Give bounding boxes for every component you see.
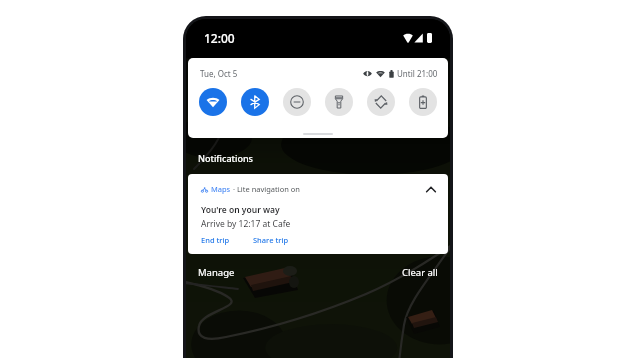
staticText: Arrive by 12:17 at Cafe	[201, 218, 291, 230]
button[interactable]: Share trip	[253, 235, 289, 245]
staticText: Tue, Oct 5	[200, 68, 238, 79]
staticText: Notifications	[198, 152, 253, 164]
button[interactable]: Battery saver	[409, 88, 437, 116]
button[interactable]: Collapse	[423, 181, 439, 197]
staticText: Maps	[211, 184, 231, 194]
button[interactable]: Bluetooth	[241, 88, 269, 116]
button[interactable]: End trip	[201, 235, 230, 245]
staticText: You're on your way	[201, 204, 280, 216]
button[interactable]: Wi-Fi	[199, 88, 227, 116]
staticText: 12:00	[204, 30, 235, 46]
button[interactable]: Clear all	[402, 266, 438, 279]
staticText: Until 21:00	[397, 68, 438, 79]
button[interactable]: Manage	[198, 266, 235, 279]
button[interactable]: Do not disturb	[283, 88, 311, 116]
button[interactable]: Flashlight	[325, 88, 353, 116]
staticText: · Lite navigation on	[231, 184, 301, 194]
button[interactable]: Auto-rotate	[367, 88, 395, 116]
